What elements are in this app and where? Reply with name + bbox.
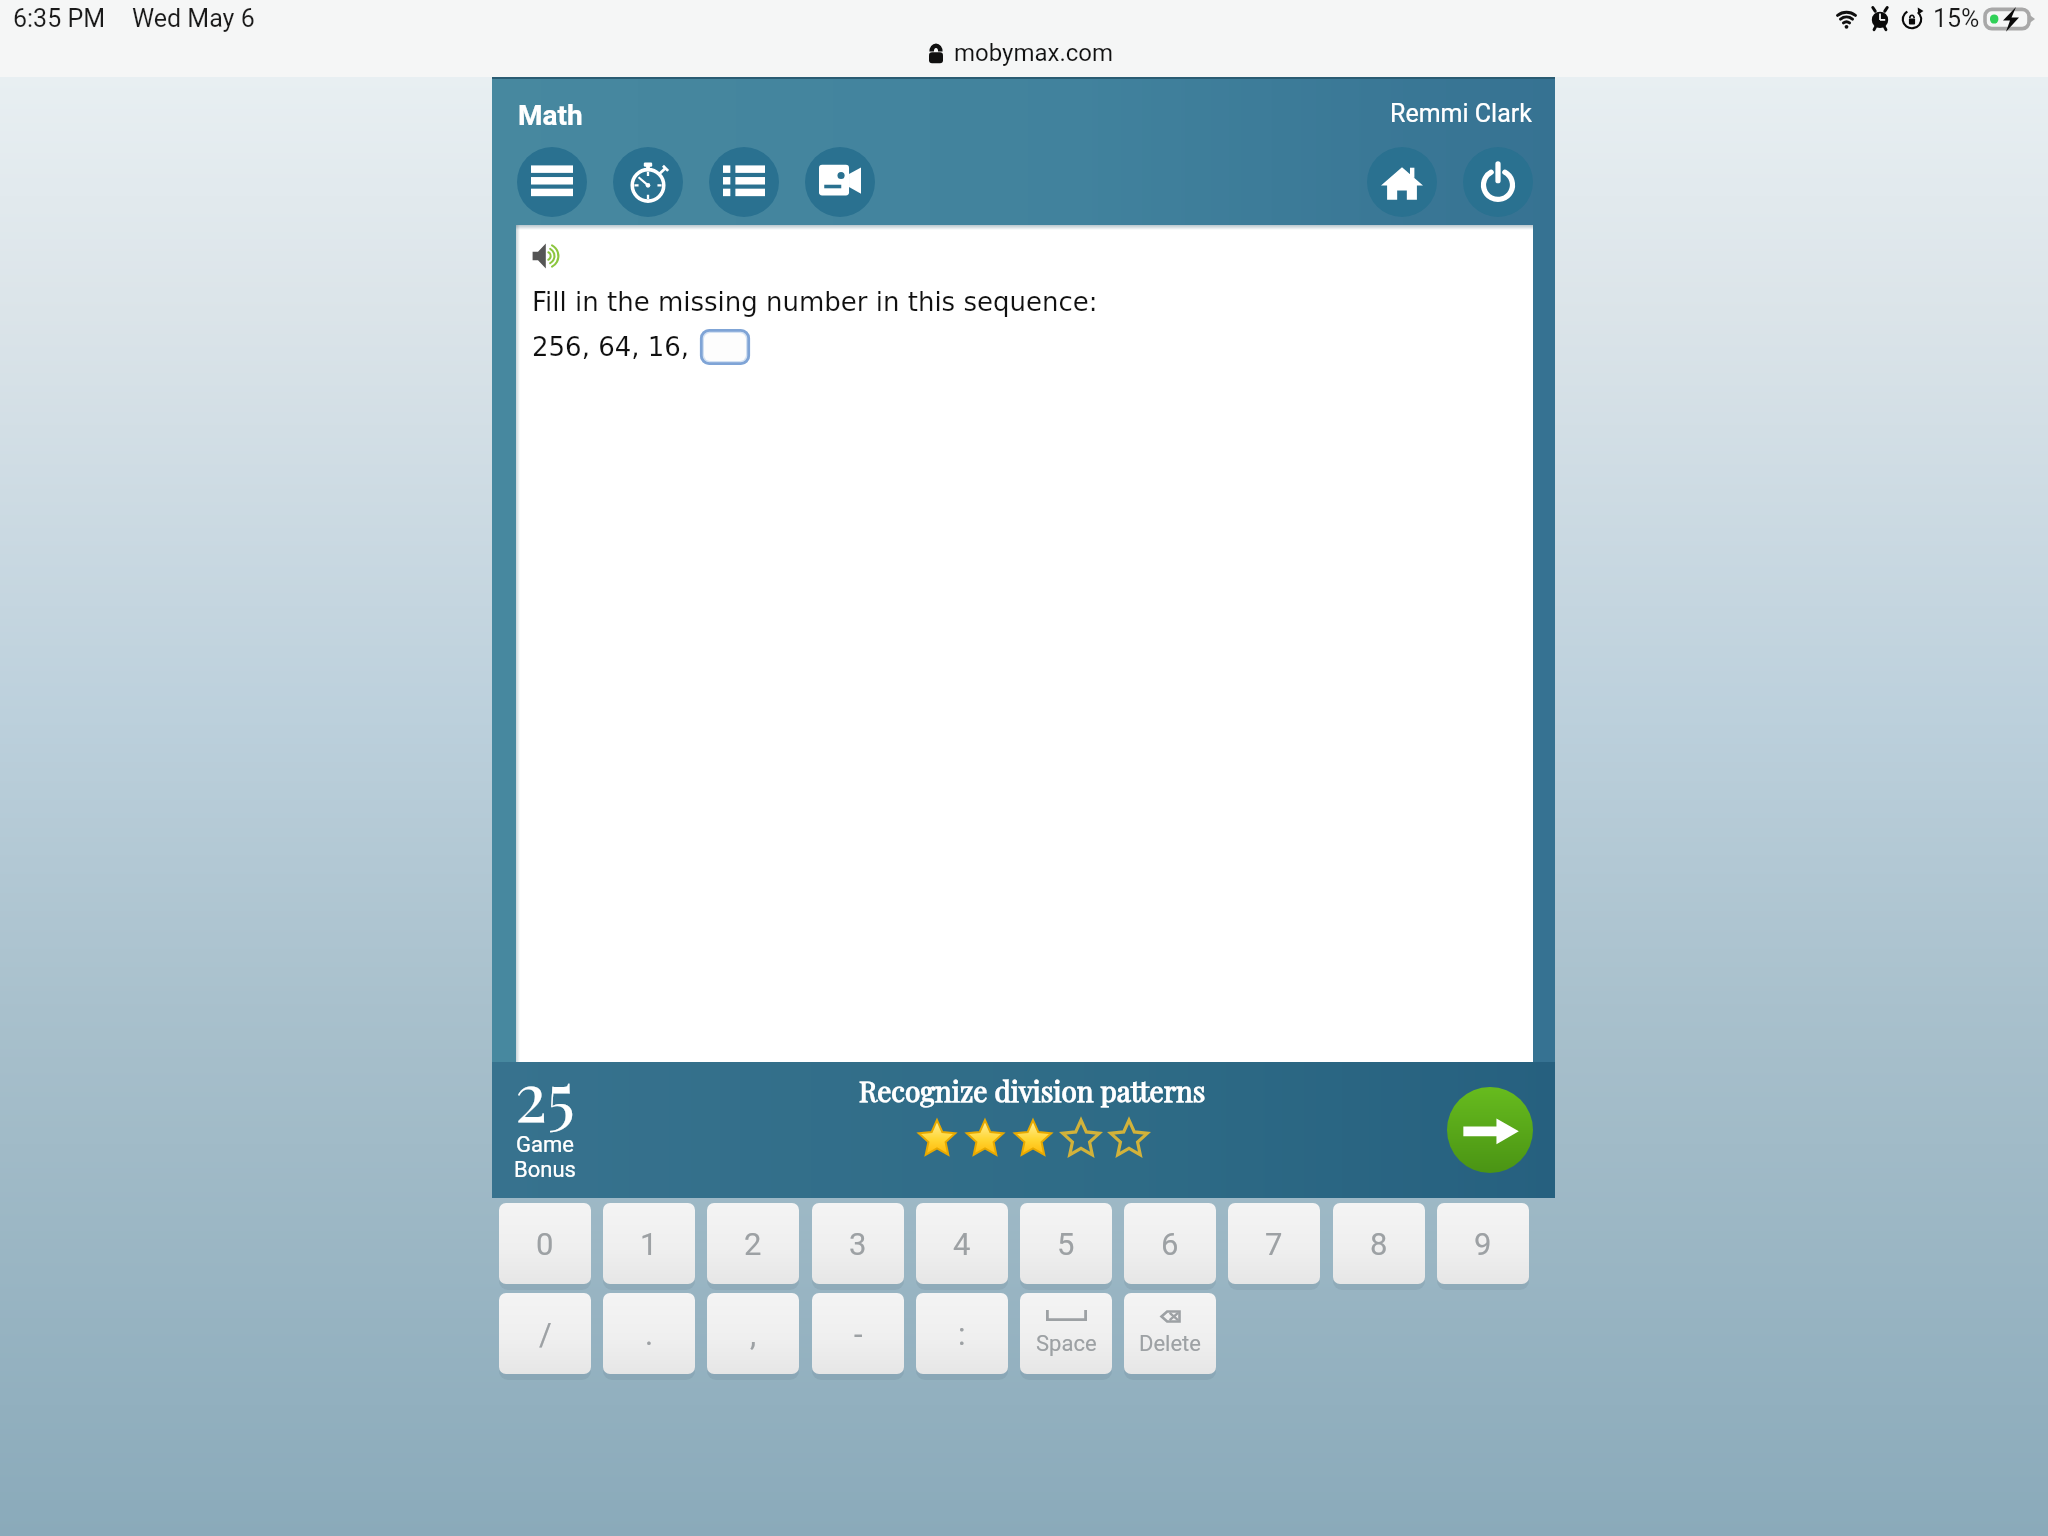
button[interactable]: 7 [1228, 1203, 1320, 1284]
staticText: 0 [536, 1226, 554, 1262]
button[interactable]: Space [1020, 1293, 1112, 1374]
staticText: 8 [1370, 1226, 1388, 1262]
staticText: Space [1036, 1331, 1097, 1357]
button[interactable]: 9 [1437, 1203, 1529, 1284]
button[interactable]: Video [805, 147, 875, 217]
staticText: : [958, 1316, 966, 1352]
button[interactable]: Delete [1124, 1293, 1216, 1374]
staticText: . [645, 1316, 654, 1352]
button[interactable]: / [499, 1293, 591, 1374]
staticText: 1 [640, 1226, 658, 1262]
button[interactable]: 1 [603, 1203, 695, 1284]
staticText: 6:35 PM [13, 4, 106, 33]
staticText: 15% [1933, 4, 1980, 33]
button[interactable]: . [603, 1293, 695, 1374]
button[interactable]: : [916, 1293, 1008, 1374]
staticText: Wed May 6 [132, 4, 255, 33]
button[interactable]: Home [1367, 147, 1437, 217]
staticText: 3 [849, 1226, 867, 1262]
staticText: 25 [515, 1050, 575, 1139]
staticText: 2 [744, 1226, 762, 1262]
button[interactable]: 3 [812, 1203, 904, 1284]
button[interactable]: Next question [1447, 1087, 1533, 1173]
button[interactable]: , [707, 1293, 799, 1374]
staticText: 5 [1057, 1226, 1075, 1262]
button[interactable]: Lesson list [709, 147, 779, 217]
staticText: 256, 64, 16, [532, 332, 690, 362]
staticText: / [539, 1316, 552, 1352]
staticText: Fill in the missing number in this seque… [532, 287, 1098, 317]
button[interactable]: 2 [707, 1203, 799, 1284]
staticText: mobymax.com [954, 39, 1114, 67]
button[interactable]: Timer [613, 147, 683, 217]
button[interactable]: Read question aloud [528, 239, 566, 273]
button[interactable]: - [812, 1293, 904, 1374]
button[interactable]: 8 [1333, 1203, 1425, 1284]
staticText: Delete [1139, 1331, 1201, 1357]
button[interactable]: Answer input box [700, 329, 750, 365]
staticText: 6 [1161, 1226, 1179, 1262]
button[interactable]: 4 [916, 1203, 1008, 1284]
staticText: Game [516, 1132, 574, 1158]
staticText: Recognize division patterns [859, 1072, 1206, 1109]
button[interactable]: Log out [1463, 147, 1533, 217]
staticText: - [854, 1316, 863, 1352]
staticText: 9 [1474, 1226, 1492, 1262]
button[interactable]: 6 [1124, 1203, 1216, 1284]
button[interactable]: 0 [499, 1203, 591, 1284]
staticText: 7 [1265, 1226, 1283, 1262]
staticText: Remmi Clark [1390, 99, 1532, 128]
staticText: , [750, 1316, 757, 1352]
button[interactable]: mobymax.com [929, 39, 1114, 67]
button[interactable]: Menu [517, 147, 587, 217]
staticText: Math [518, 99, 583, 132]
staticText: Bonus [514, 1157, 576, 1183]
staticText: 4 [953, 1226, 971, 1262]
button[interactable]: 5 [1020, 1203, 1112, 1284]
